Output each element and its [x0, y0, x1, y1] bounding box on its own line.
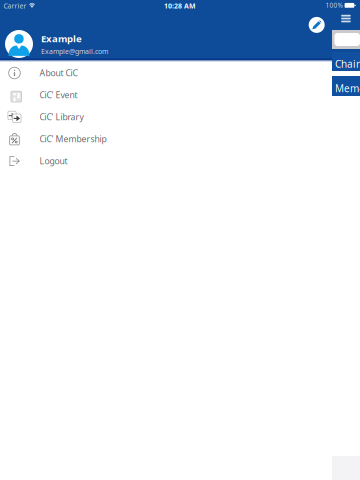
button[interactable]: Logout [0, 150, 332, 172]
button[interactable]: About CiC [0, 62, 332, 84]
staticText: CiC' Event [39, 89, 77, 101]
button[interactable]: Membership [332, 76, 360, 96]
staticText: CiC' Membership [39, 133, 106, 145]
button[interactable]: Example [0, 30, 332, 58]
staticText: 100% [326, 1, 343, 10]
staticText: 10:28 AM [164, 1, 196, 10]
button[interactable]: CiC' Library [0, 106, 332, 128]
button[interactable]: Compose [309, 17, 325, 33]
staticText: Carrier [3, 1, 26, 10]
staticText: Example [41, 32, 82, 45]
button[interactable]: Chairman [332, 52, 360, 71]
staticText: Logout [39, 155, 67, 167]
button[interactable]: Menu [341, 15, 351, 22]
staticText: Membership [335, 81, 360, 122]
staticText: About CiC [39, 67, 77, 79]
button[interactable]: CiC' Membership [0, 128, 332, 150]
button[interactable]: CiC' Event [0, 84, 332, 106]
staticText: Example@gmail.com [41, 47, 108, 56]
staticText: CiC' Library [39, 111, 83, 123]
staticText: Chairman [335, 57, 360, 84]
